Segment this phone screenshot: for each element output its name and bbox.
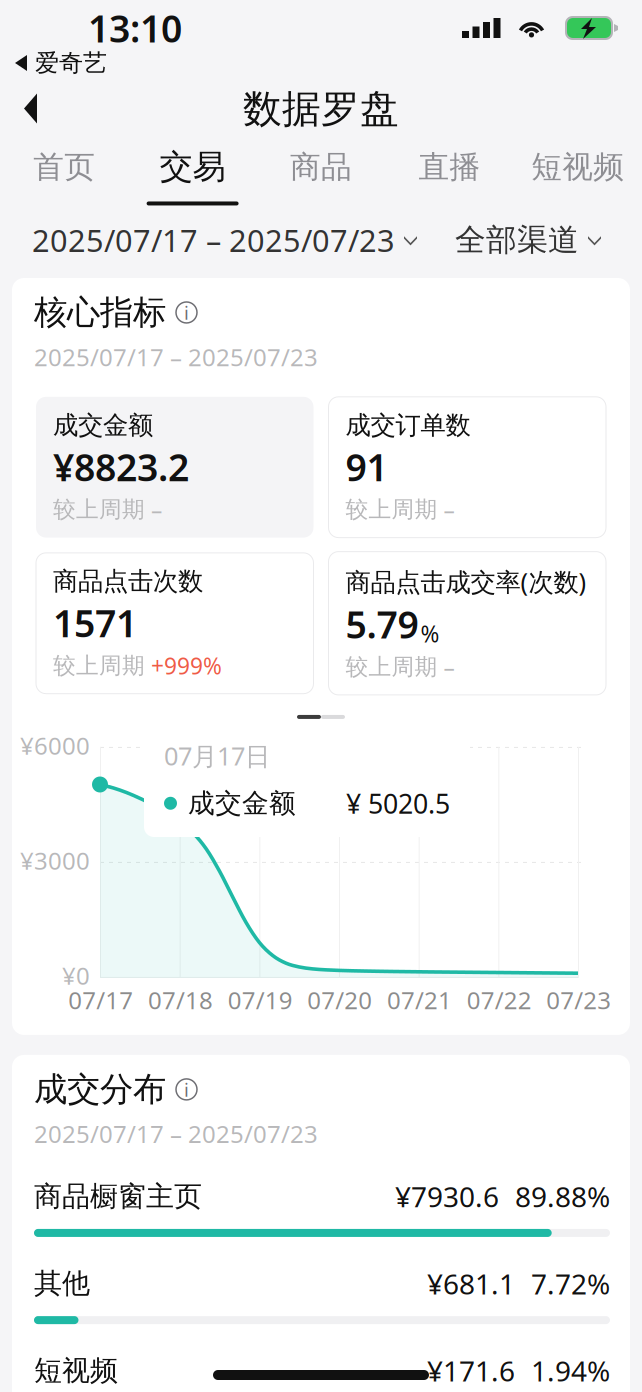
staticText: %: [420, 619, 439, 649]
staticText: 商品点击成交率(次数): [345, 565, 586, 598]
staticText: 7.72%: [531, 1265, 610, 1302]
staticText: i: [184, 1077, 189, 1102]
button[interactable]: Back: [0, 80, 56, 137]
staticText: 07/19: [228, 984, 293, 1016]
staticText: ¥ 5020.5: [346, 786, 450, 821]
staticText: 13:10: [88, 3, 182, 53]
staticText: 07/22: [467, 984, 532, 1016]
button[interactable]: 交易: [128, 132, 257, 213]
staticText: 较上周期: [53, 496, 145, 523]
staticText: 07/18: [148, 984, 213, 1016]
staticText: 核心指标: [34, 292, 166, 333]
staticText: –: [443, 652, 454, 682]
button[interactable]: 全部渠道: [443, 211, 613, 269]
staticText: 直播: [418, 148, 480, 186]
staticText: 07/21: [387, 984, 452, 1016]
staticText: –: [443, 494, 454, 525]
staticText: 5.79: [345, 599, 418, 649]
staticText: 短视频: [34, 1353, 118, 1388]
staticText: ¥3000: [20, 844, 90, 876]
staticText: 2025/07/17 – 2025/07/23: [34, 1118, 318, 1150]
staticText: 成交分布: [34, 1069, 166, 1110]
staticText: 成交订单数: [345, 410, 470, 441]
staticText: 1.94%: [531, 1352, 610, 1389]
staticText: 成交金额: [188, 787, 296, 820]
staticText: 其他: [34, 1266, 90, 1301]
staticText: ¥7930.6: [395, 1178, 499, 1215]
staticText: 商品点击次数: [53, 566, 203, 597]
staticText: 07/17: [68, 984, 133, 1016]
staticText: 商品: [290, 148, 352, 186]
button[interactable]: 商品点击成交率(次数): [328, 552, 606, 695]
staticText: 商品橱窗主页: [34, 1179, 202, 1213]
button[interactable]: 2025/07/17 – 2025/07/23: [20, 210, 429, 270]
button[interactable]: 商品点击次数: [36, 553, 313, 694]
staticText: 较上周期: [345, 653, 437, 681]
staticText: –: [151, 494, 162, 525]
staticText: 成交金额: [53, 410, 153, 441]
button[interactable]: 首页: [0, 134, 128, 212]
button[interactable]: 成交订单数: [328, 397, 606, 538]
staticText: 89.88%: [515, 1178, 610, 1215]
staticText: 短视频: [531, 148, 624, 186]
staticText: ¥0: [62, 959, 90, 991]
staticText: 首页: [33, 148, 95, 186]
staticText: i: [184, 300, 189, 325]
staticText: 2025/07/17 – 2025/07/23: [34, 341, 318, 373]
staticText: 1571: [53, 598, 137, 648]
staticText: ¥6000: [20, 729, 90, 761]
staticText: 07/20: [307, 984, 372, 1016]
staticText: 爱奇艺: [35, 48, 107, 78]
staticText: ¥171.6: [427, 1352, 515, 1389]
button[interactable]: 商品: [257, 134, 385, 212]
staticText: 较上周期: [345, 496, 437, 523]
staticText: 较上周期: [53, 652, 145, 679]
button[interactable]: 成交金额: [36, 397, 313, 538]
staticText: 2025/07/17 – 2025/07/23: [32, 220, 395, 260]
staticText: 全部渠道: [455, 221, 579, 259]
staticText: ¥8823.2: [53, 442, 189, 491]
staticText: 07月17日: [164, 739, 270, 772]
staticText: +999%: [151, 651, 222, 681]
button[interactable]: 直播: [385, 134, 514, 212]
staticText: 数据罗盘: [243, 85, 399, 133]
button[interactable]: 短视频: [514, 134, 642, 212]
staticText: 91: [345, 442, 387, 491]
staticText: 07/23: [546, 984, 611, 1016]
staticText: 交易: [160, 146, 226, 187]
staticText: ¥681.1: [427, 1265, 515, 1302]
